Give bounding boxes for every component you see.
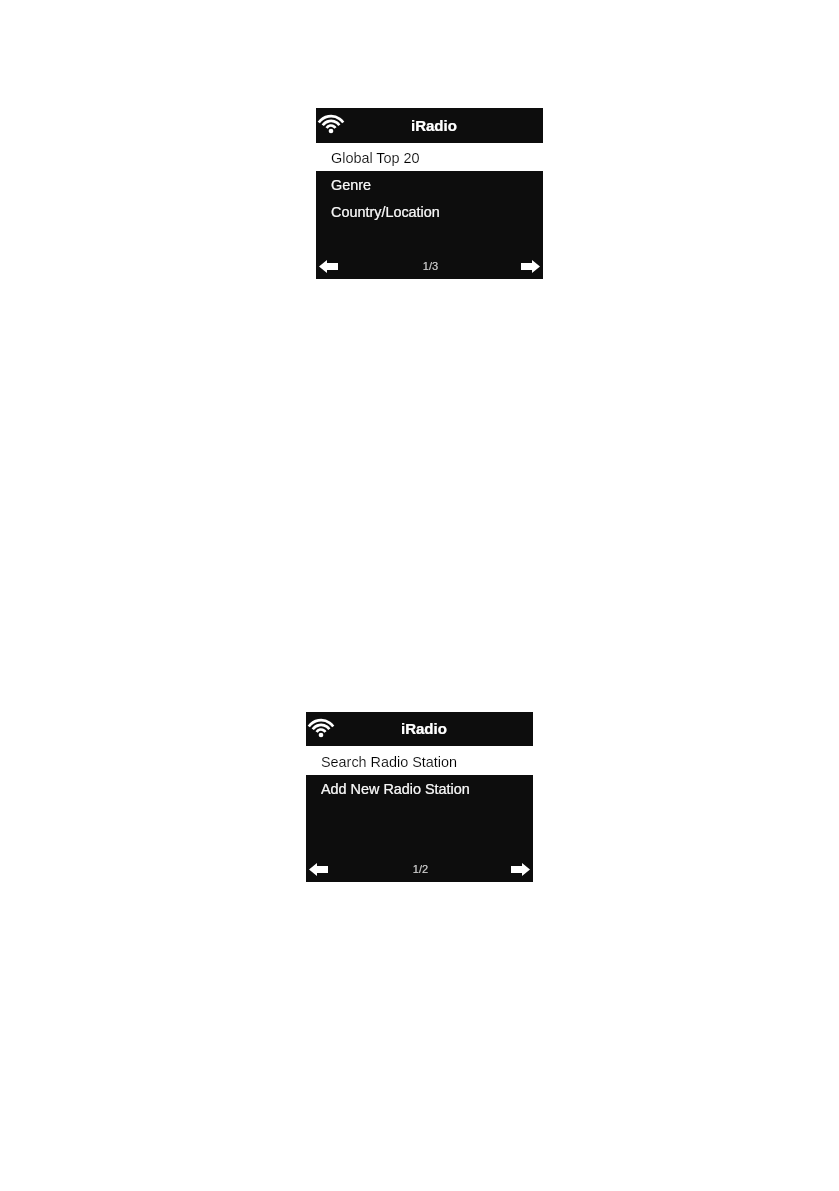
staticText: 1/2 bbox=[347, 863, 494, 875]
staticText: Global Top 20 bbox=[331, 150, 420, 166]
button[interactable]: Next page bbox=[503, 252, 543, 279]
button[interactable]: Previous page bbox=[306, 855, 346, 882]
staticText: Add New Radio Station bbox=[321, 781, 470, 797]
button[interactable]: Country/Location bbox=[316, 198, 543, 225]
staticText: iRadio bbox=[401, 720, 447, 737]
staticText: Search Radio Station bbox=[321, 754, 457, 770]
other: Wi-Fi signal bbox=[316, 112, 346, 136]
button[interactable]: Add New Radio Station bbox=[306, 775, 533, 802]
button[interactable]: Search Radio Station bbox=[306, 746, 533, 775]
other: Wi-Fi signal bbox=[306, 716, 336, 740]
staticText: Genre bbox=[331, 177, 371, 193]
staticText: iRadio bbox=[411, 117, 457, 134]
staticText: Country/Location bbox=[331, 204, 440, 220]
button[interactable]: Global Top 20 bbox=[316, 143, 543, 171]
button[interactable]: Next page bbox=[493, 855, 533, 882]
button[interactable]: Genre bbox=[316, 171, 543, 198]
button[interactable]: Previous page bbox=[316, 252, 356, 279]
staticText: 1/3 bbox=[357, 260, 504, 272]
